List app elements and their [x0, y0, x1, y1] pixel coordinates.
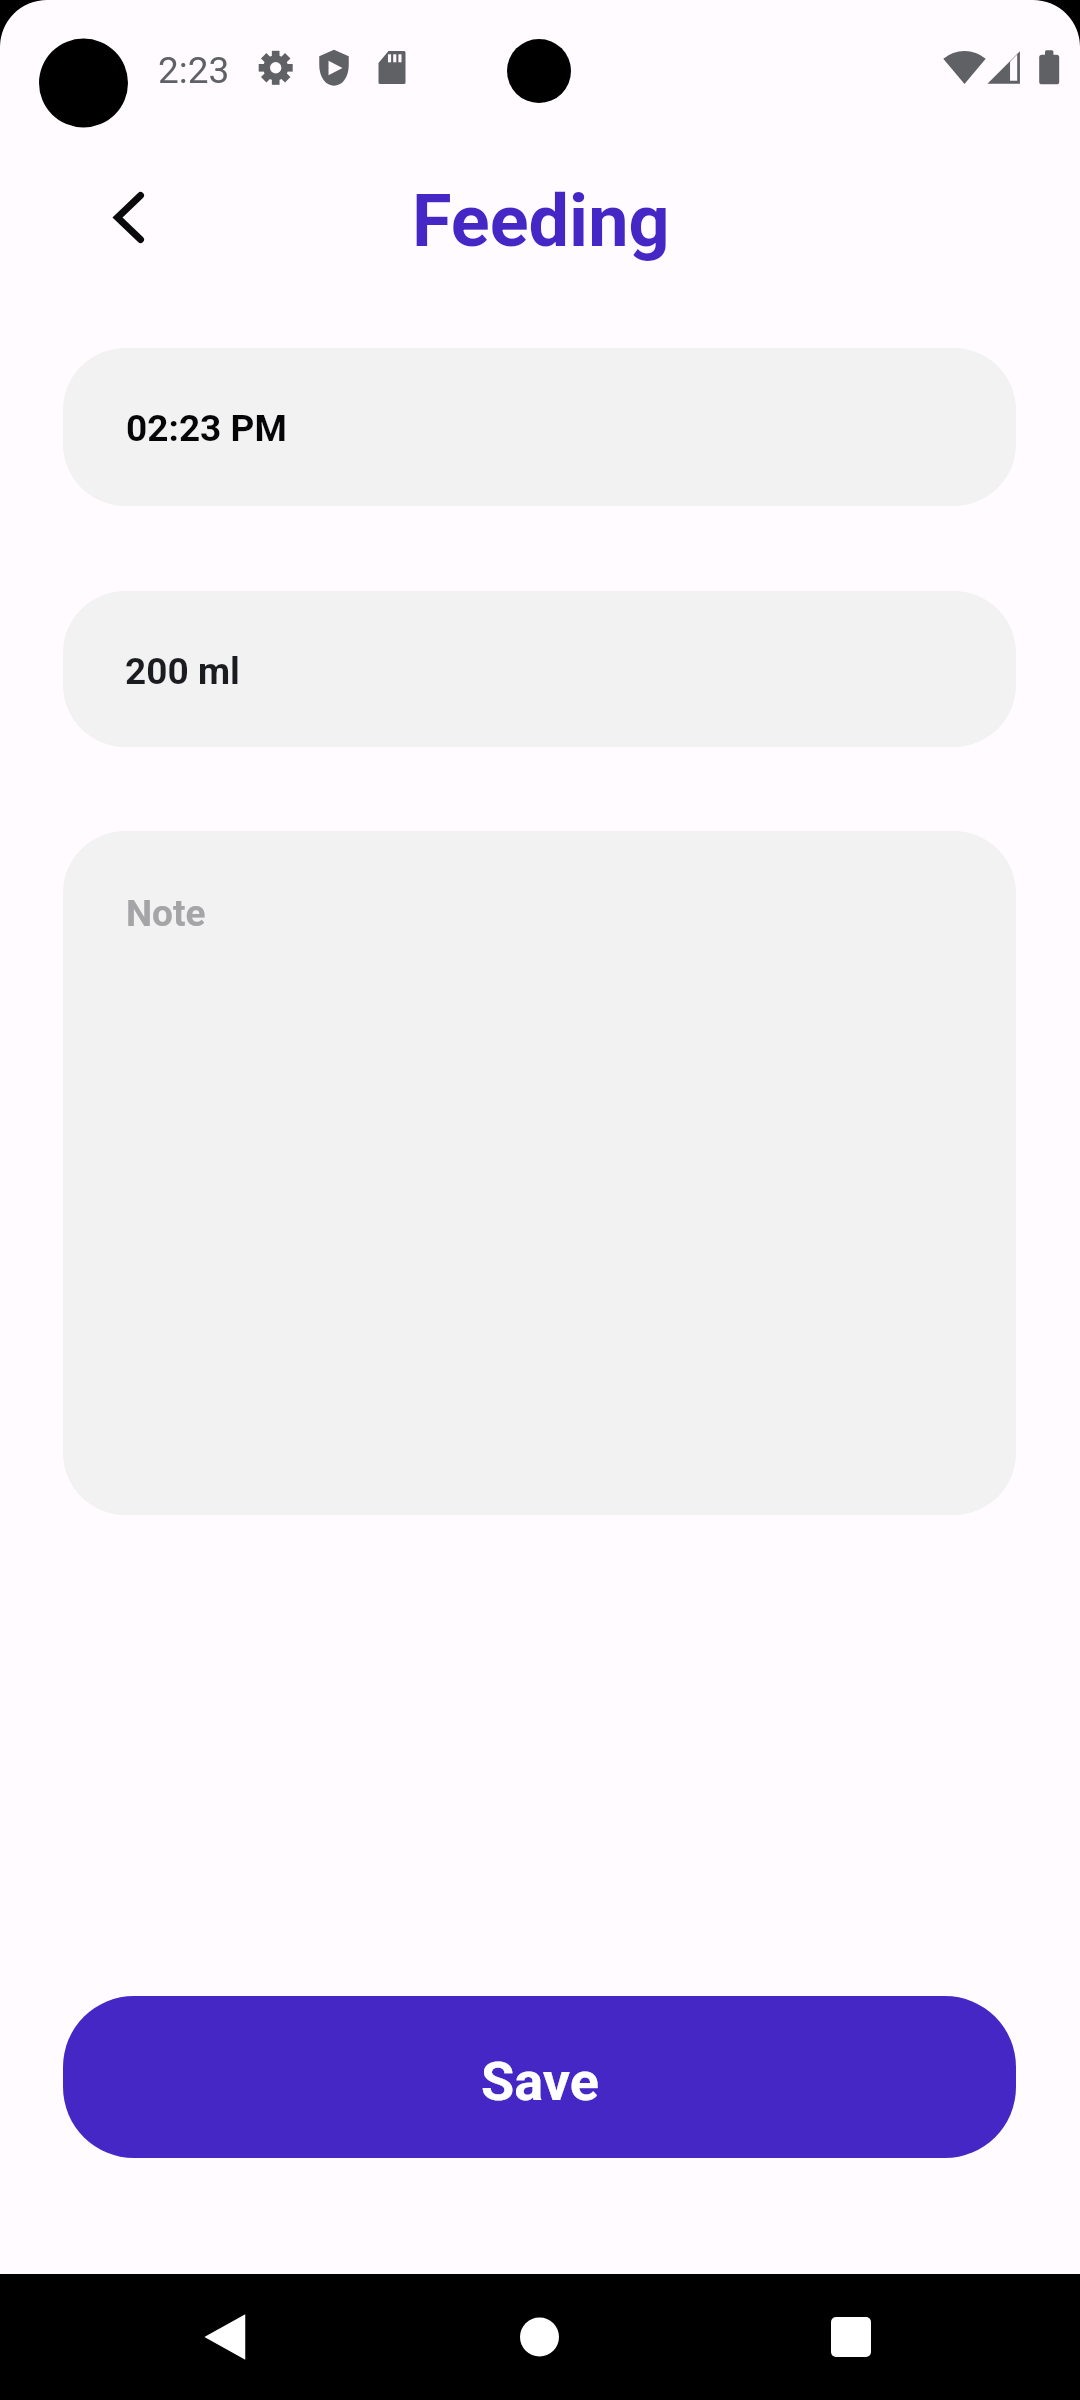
button[interactable]: 02:23 PM — [63, 348, 1016, 506]
button[interactable]: Home — [477, 2274, 603, 2400]
button[interactable]: Save — [63, 1996, 1016, 2158]
staticText: Feeding — [412, 179, 670, 263]
button[interactable]: Back — [163, 2274, 289, 2400]
button[interactable]: Note — [63, 831, 1016, 1515]
staticText: Save — [481, 2050, 599, 2113]
staticText: 200 ml — [125, 650, 240, 693]
staticText: Note — [126, 892, 206, 935]
button[interactable]: Back — [85, 173, 173, 261]
staticText: 2:23 — [158, 49, 230, 92]
staticText: 02:23 PM — [126, 407, 287, 450]
button[interactable]: Recent apps — [788, 2274, 914, 2400]
button[interactable]: 200 ml — [63, 591, 1016, 747]
